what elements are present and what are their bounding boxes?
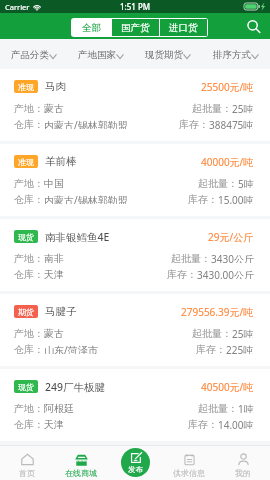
staticText: 仓库： — [14, 343, 44, 354]
staticText: 仓库： — [14, 268, 44, 279]
staticText: 起批量： — [198, 402, 238, 413]
staticText: 产地： — [14, 252, 44, 263]
staticText: 起批量： — [171, 252, 211, 263]
button[interactable]: 期货 — [0, 294, 270, 366]
staticText: 排序方式 — [213, 49, 251, 61]
button[interactable]: 产地国家 — [67, 39, 134, 69]
staticText: 我的 — [235, 468, 251, 478]
staticText: 期货 — [18, 307, 34, 317]
button[interactable]: 供求信息 — [162, 445, 216, 480]
staticText: 产地： — [14, 327, 44, 338]
button[interactable]: 全部 — [72, 19, 111, 36]
staticText: 5吨 — [238, 177, 254, 188]
staticText: 山东/菏泽市 — [44, 343, 98, 354]
staticText: 库存： — [167, 268, 197, 279]
staticText: 准现 — [18, 157, 34, 167]
staticText: 全部 — [82, 22, 101, 34]
staticText: 内蒙古/锡林郭勒盟 — [44, 193, 128, 204]
staticText: 产品分类 — [11, 49, 49, 61]
button[interactable]: 现货 — [0, 219, 270, 291]
staticText: 阿根廷 — [44, 402, 74, 413]
staticText: 库存： — [179, 118, 209, 129]
staticText: 249厂牛板腱 — [45, 380, 106, 393]
button[interactable]: 进口货 — [160, 19, 207, 36]
staticText: 进口货 — [169, 22, 198, 34]
button[interactable]: 准现 — [0, 144, 270, 216]
staticText: 起批量： — [192, 327, 232, 338]
button[interactable]: 排序方式 — [202, 39, 270, 69]
staticText: 15.00吨 — [218, 193, 254, 204]
staticText: 发布 — [128, 465, 143, 474]
staticText: 1吨 — [238, 402, 254, 413]
staticText: 产地： — [14, 102, 44, 113]
staticText: 现货期货 — [145, 49, 183, 61]
staticText: 25吨 — [232, 327, 254, 338]
staticText: 中国 — [44, 177, 64, 188]
staticText: 25500元/吨 — [201, 80, 254, 93]
staticText: 在线商城 — [65, 468, 97, 478]
staticText: 天津 — [44, 418, 64, 429]
staticText: 产地： — [14, 402, 44, 413]
staticText: 3430.00公斤 — [197, 268, 254, 279]
staticText: 产地国家 — [78, 49, 116, 61]
button[interactable]: 国产货 — [112, 19, 159, 36]
staticText: 279556.39元/吨 — [181, 305, 254, 318]
button[interactable]: 产品分类 — [0, 39, 67, 69]
button[interactable]: 发布 — [121, 448, 150, 477]
staticText: 29元/公斤 — [208, 230, 254, 243]
staticText: 库存： — [188, 418, 218, 429]
button[interactable]: Search — [243, 16, 263, 36]
staticText: 仓库： — [14, 118, 44, 129]
staticText: 库存： — [188, 193, 218, 204]
button[interactable]: 准现 — [0, 69, 270, 141]
staticText: 40500元/吨 — [201, 380, 254, 393]
staticText: 388475吨 — [209, 118, 254, 129]
staticText: 内蒙古/锡林郭勒盟 — [44, 118, 128, 129]
button[interactable]: 在线商城 — [54, 445, 108, 480]
staticText: 产地： — [14, 177, 44, 188]
staticText: 首页 — [19, 468, 35, 478]
staticText: 起批量： — [198, 177, 238, 188]
staticText: 供求信息 — [173, 468, 205, 478]
staticText: 仓库： — [14, 193, 44, 204]
staticText: 225吨 — [226, 343, 254, 354]
staticText: 马肉 — [45, 80, 66, 93]
staticText: 40000元/吨 — [201, 155, 254, 168]
staticText: 南非银鳕鱼4E — [45, 230, 110, 243]
staticText: 南非 — [44, 252, 64, 263]
staticText: 现货 — [18, 232, 34, 242]
staticText: 3430公斤 — [211, 252, 254, 263]
staticText: 蒙古 — [44, 102, 64, 113]
staticText: 现货 — [18, 382, 34, 392]
staticText: 起批量： — [192, 102, 232, 113]
staticText: 马腱子 — [45, 305, 77, 318]
button[interactable]: 我的 — [216, 445, 270, 480]
button[interactable]: 现货 — [0, 369, 270, 441]
staticText: 天津 — [44, 268, 64, 279]
staticText: 仓库： — [14, 418, 44, 429]
button[interactable]: 现货期货 — [134, 39, 202, 69]
staticText: 准现 — [18, 82, 34, 92]
button[interactable]: 首页 — [0, 445, 54, 480]
staticText: 蒙古 — [44, 327, 64, 338]
staticText: 14.00吨 — [218, 418, 254, 429]
staticText: 库存： — [196, 343, 226, 354]
staticText: 25吨 — [232, 102, 254, 113]
staticText: 国产货 — [121, 22, 150, 34]
staticText: 羊前棒 — [45, 155, 77, 168]
staticText: Carrier — [5, 2, 30, 12]
staticText: 1:51 PM — [120, 1, 151, 12]
